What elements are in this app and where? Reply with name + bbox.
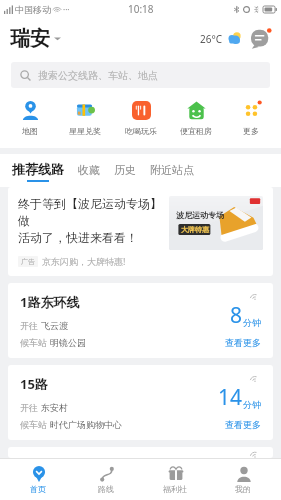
staticText: 15路: [20, 375, 48, 393]
staticText: 瑞安: [10, 26, 50, 51]
staticText: 中国移动: [15, 4, 51, 15]
staticText: 候车站: [20, 418, 50, 430]
button[interactable]: 收藏: [78, 163, 100, 182]
button[interactable]: 福利社: [144, 459, 206, 500]
button[interactable]: 首页: [7, 459, 69, 500]
staticText: 10:18: [128, 2, 154, 16]
staticText: 路线: [98, 484, 114, 494]
staticText: 东安村: [41, 402, 68, 413]
staticText: 查看更多: [225, 337, 261, 348]
staticText: 我的: [235, 484, 251, 494]
staticText: 附近站点: [150, 163, 194, 177]
staticText: 26°C: [200, 32, 223, 46]
button[interactable]: 我的: [212, 459, 274, 500]
staticText: 历史: [114, 163, 136, 177]
button[interactable]: 历史: [114, 163, 136, 182]
staticText: 14: [218, 383, 243, 412]
staticText: 首页: [30, 484, 46, 494]
staticText: 分钟: [243, 317, 261, 328]
button[interactable]: 附近站点: [150, 163, 194, 182]
staticText: 福利社: [163, 484, 187, 494]
staticText: ···: [63, 4, 70, 15]
button[interactable]: 查看更多: [225, 337, 261, 348]
button[interactable]: 推荐线路: [12, 161, 64, 182]
button[interactable]: 便宜租房: [171, 98, 221, 138]
button[interactable]: 星星兑奖: [60, 98, 110, 138]
button[interactable]: 26°C: [198, 29, 244, 48]
staticText: 京东闪购，大牌特惠!: [42, 255, 126, 267]
staticText: 地图: [22, 126, 38, 136]
staticText: 分钟: [243, 399, 261, 410]
button[interactable]: 更多: [226, 98, 276, 138]
staticText: 更多: [243, 126, 259, 136]
button[interactable]: 瑞安: [10, 26, 61, 51]
staticText: 终于等到【波尼运动专场】做 活动了，快进来看看！: [18, 196, 163, 245]
staticText: 便宜租房: [180, 126, 212, 136]
staticText: 收藏: [78, 163, 100, 177]
button[interactable]: 搜索公交线路、车站、地点: [11, 62, 270, 88]
staticText: 大牌特惠: [181, 225, 209, 234]
staticText: 明镜公园: [50, 337, 86, 348]
staticText: 开往: [20, 401, 41, 413]
staticText: 推荐线路: [12, 161, 64, 177]
button[interactable]: 15路: [8, 365, 273, 440]
staticText: 飞云渡: [41, 320, 68, 331]
button[interactable]: 终于等到【波尼运动专场】做 活动了，快进来看看！: [8, 187, 273, 276]
staticText: 8: [230, 301, 243, 330]
staticText: 搜索公交线路、车站、地点: [38, 69, 158, 82]
staticText: 星星兑奖: [69, 126, 101, 136]
staticText: 时代广场购物中心: [50, 419, 122, 430]
staticText: 候车站: [20, 336, 50, 348]
button[interactable]: 路线: [75, 459, 137, 500]
other: Weather: [227, 31, 242, 46]
staticText: 1路东环线: [20, 293, 80, 311]
staticText: 广告: [21, 257, 35, 266]
button[interactable]: Messages: [251, 28, 272, 49]
staticText: 波尼运动专场: [176, 210, 224, 220]
button[interactable]: 地图: [5, 98, 55, 138]
button[interactable]: 吃喝玩乐: [116, 98, 166, 138]
staticText: ꉂ: [253, 4, 260, 15]
button[interactable]: 105路: [8, 447, 273, 458]
staticText: 查看更多: [225, 419, 261, 430]
staticText: 吃喝玩乐: [125, 126, 157, 136]
staticText: 开往: [20, 319, 41, 331]
button[interactable]: 查看更多: [225, 419, 261, 430]
button[interactable]: 1路东环线: [8, 283, 273, 358]
